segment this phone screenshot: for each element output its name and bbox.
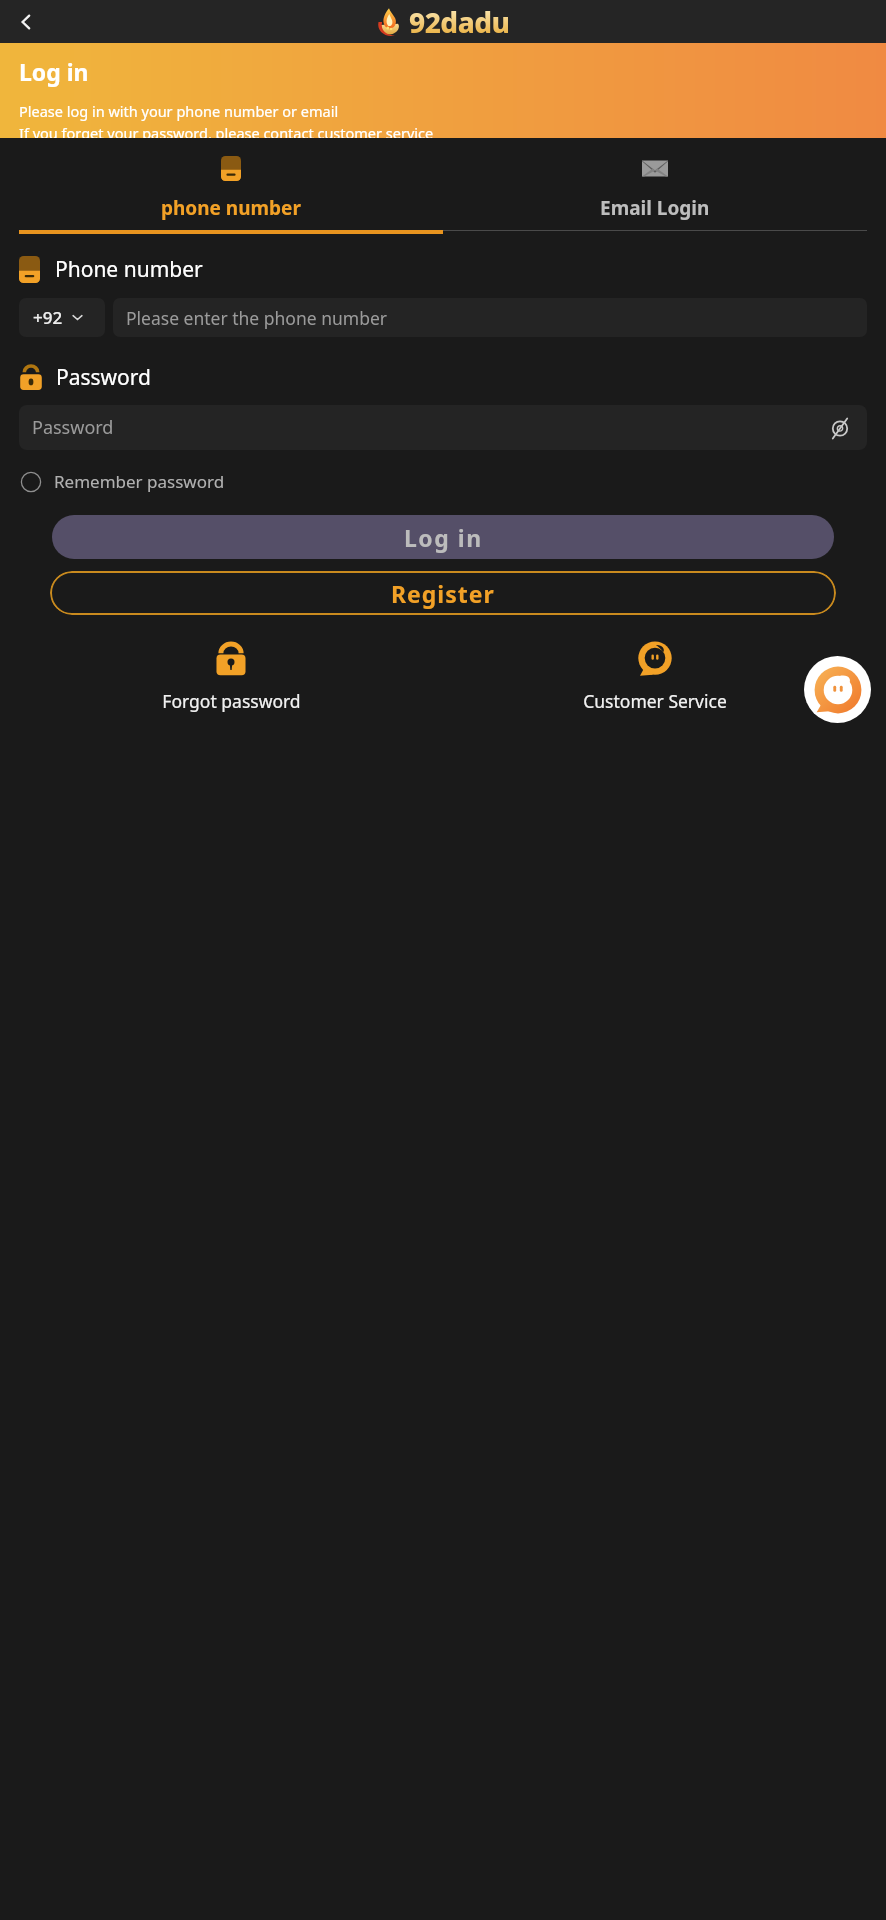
staticText: Phone number <box>55 255 203 284</box>
button[interactable]: Customer Service <box>443 637 867 713</box>
staticText: phone number <box>161 195 301 221</box>
button[interactable]: Email Login <box>443 138 867 231</box>
button[interactable]: Please enter the phone number <box>113 298 867 337</box>
staticText: Please enter the phone number <box>126 306 388 330</box>
staticText: Please log in with your phone number or … <box>19 101 339 121</box>
staticText: Register <box>391 578 495 609</box>
staticText: If you forget your password, please cont… <box>19 123 434 138</box>
staticText: Log in <box>19 56 89 87</box>
button[interactable]: Remember password <box>19 466 227 497</box>
staticText: +92 <box>33 306 63 329</box>
button[interactable]: Log in <box>52 515 834 559</box>
button[interactable]: phone number <box>19 138 443 234</box>
staticText: Remember password <box>54 470 225 493</box>
button[interactable]: Forgot password <box>19 637 443 713</box>
button[interactable]: Customer Service chat <box>804 656 871 723</box>
staticText: Email Login <box>600 195 710 221</box>
staticText: Customer Service <box>583 689 727 713</box>
button[interactable]: Back <box>8 4 44 40</box>
button[interactable]: Password <box>19 405 867 450</box>
staticText: 92dadu <box>409 3 510 41</box>
button[interactable]: Show password <box>825 413 855 443</box>
staticText: Log in <box>404 522 483 553</box>
button[interactable]: Register <box>50 571 836 615</box>
button[interactable]: +92 <box>19 298 105 337</box>
staticText: Forgot password <box>162 689 301 713</box>
staticText: Password <box>32 415 114 440</box>
staticText: Password <box>56 363 151 392</box>
